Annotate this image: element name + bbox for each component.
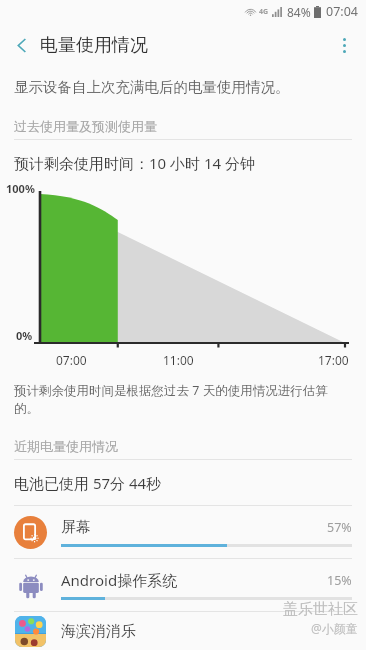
staticText: 电池已使用 57分 44秒 xyxy=(14,473,162,493)
staticText: 57% xyxy=(327,519,352,536)
button[interactable]: 海滨消消乐 xyxy=(0,612,366,650)
staticText: 预计剩余使用时间是根据您过去 7 天的使用情况进行估算的。 xyxy=(14,382,352,416)
staticText: 17:00 xyxy=(318,352,349,368)
staticText: 海滨消消乐 xyxy=(61,622,136,641)
staticText: 84% xyxy=(287,4,311,20)
button[interactable]: Android操作系统 xyxy=(0,559,366,611)
staticText: 07:00 xyxy=(56,352,87,368)
staticText: Android操作系统 xyxy=(61,570,178,590)
staticText: @小颜童 xyxy=(311,620,358,636)
staticText: 11:00 xyxy=(163,352,194,368)
button[interactable]: Back xyxy=(0,23,44,67)
staticText: 07:04 xyxy=(326,3,358,20)
button[interactable]: More options xyxy=(322,23,366,67)
staticText: 15% xyxy=(327,572,352,589)
staticText: 预计剩余使用时间：10 小时 14 分钟 xyxy=(14,153,256,173)
staticText: 电量使用情况 xyxy=(40,34,148,57)
staticText: 显示设备自上次充满电后的电量使用情况。 xyxy=(14,78,290,96)
staticText: 过去使用量及预测使用量 xyxy=(14,118,157,134)
staticText: 4G xyxy=(259,7,269,17)
button[interactable]: 屏幕 xyxy=(0,506,366,558)
staticText: 盖乐世社区 xyxy=(283,600,358,619)
staticText: 0% xyxy=(16,328,33,343)
staticText: 近期电量使用情况 xyxy=(14,438,118,454)
staticText: 屏幕 xyxy=(61,518,91,537)
staticText: 100% xyxy=(6,181,35,196)
